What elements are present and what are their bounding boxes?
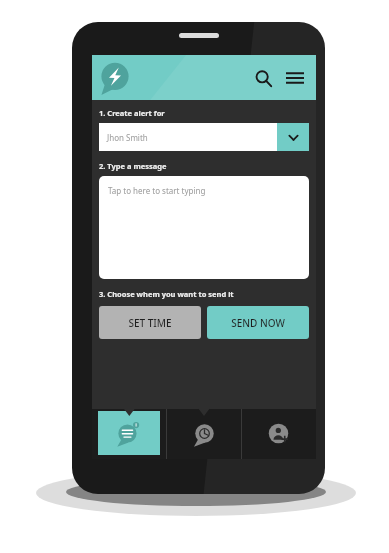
staticText: SEND NOW [231,316,285,330]
staticText: Jhon Smith [107,132,148,143]
staticText: Tap to here to start typing [108,185,206,196]
button[interactable]: Search [250,65,276,91]
button[interactable]: SEND NOW [207,306,309,339]
staticText: 2. Type a message [99,161,167,171]
button[interactable]: App logo [98,61,132,95]
button[interactable]: Jhon Smith [99,123,309,151]
button[interactable]: Messages [92,409,166,459]
button[interactable]: SET TIME [99,306,201,339]
staticText: 3. Choose whem you want to send it [99,289,234,299]
button[interactable]: Scheduled messages [167,409,241,459]
staticText: 1. Create alert for [99,108,165,118]
staticText: SET TIME [128,316,172,330]
button[interactable]: Menu [282,65,308,91]
button[interactable]: Tap to here to start typing [99,176,309,279]
button[interactable]: Add contact [242,409,316,459]
